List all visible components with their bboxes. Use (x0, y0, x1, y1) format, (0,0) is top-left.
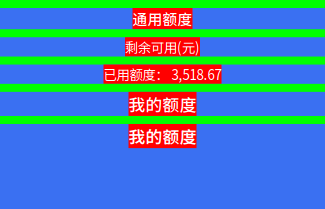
staticText: 已用额度： 3,518.67 (103, 64, 221, 84)
staticText: 通用额度 (132, 8, 192, 29)
staticText: 剩余可用(元) (125, 37, 200, 56)
staticText: 我的额度 (128, 124, 196, 148)
staticText: 我的额度 (128, 92, 196, 116)
